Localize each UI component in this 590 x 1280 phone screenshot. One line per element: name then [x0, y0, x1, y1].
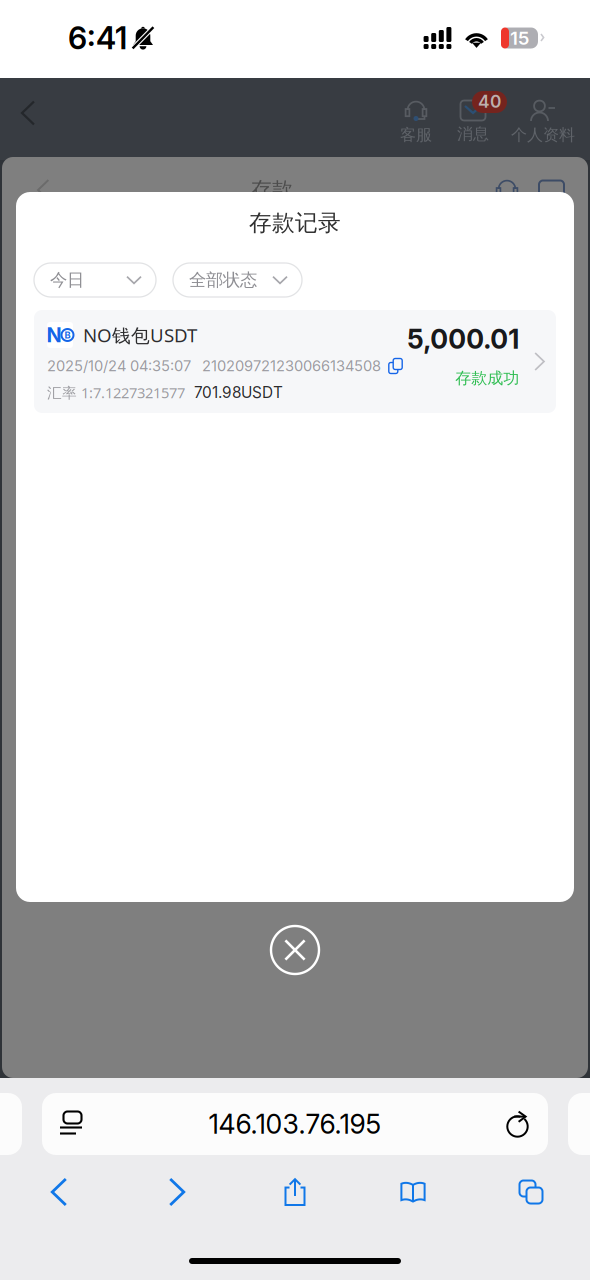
button[interactable]: Share [236, 1167, 354, 1217]
staticText: 消息 [457, 124, 489, 144]
staticText: 210209721230066134508 [202, 357, 381, 375]
button[interactable]: Reload [490, 1093, 548, 1155]
button[interactable]: 全部状态 [173, 263, 302, 297]
button[interactable]: Tabs [472, 1167, 590, 1217]
staticText: 5,000.01 [407, 323, 519, 355]
button[interactable]: Close [247, 902, 343, 998]
staticText: 2025/10/24 04:35:07 [47, 357, 191, 375]
button[interactable]: 客服 [400, 100, 432, 145]
staticText: NO钱包USDT [83, 323, 197, 347]
button[interactable]: N [34, 310, 556, 413]
staticText: B [64, 329, 70, 341]
staticText: 40 [478, 91, 501, 112]
button[interactable]: Back [6, 91, 50, 135]
staticText: 存款成功 [455, 368, 519, 388]
staticText: 146.103.76.195 [208, 1108, 381, 1140]
staticText: 客服 [400, 125, 432, 145]
button[interactable]: 个人资料 [511, 100, 575, 145]
staticText: 个人资料 [511, 125, 575, 145]
staticText: 6:41 [68, 19, 127, 56]
staticText: 汇率 1:7.1227321577 [47, 383, 185, 402]
staticText: 15 [510, 27, 529, 49]
button[interactable]: Forward [118, 1167, 236, 1217]
button[interactable]: Page settings [42, 1093, 100, 1155]
button[interactable]: Back [0, 1167, 118, 1217]
staticText: 全部状态 [189, 269, 257, 291]
button[interactable]: Bookmarks [354, 1167, 472, 1217]
staticText: N [46, 323, 61, 347]
staticText: 存款 [251, 177, 293, 203]
button[interactable]: 今日 [34, 263, 156, 297]
staticText: 存款记录 [249, 209, 341, 237]
staticText: 701.98USDT [194, 383, 283, 402]
button[interactable]: 消息 [454, 100, 489, 144]
staticText: 今日 [50, 269, 84, 291]
